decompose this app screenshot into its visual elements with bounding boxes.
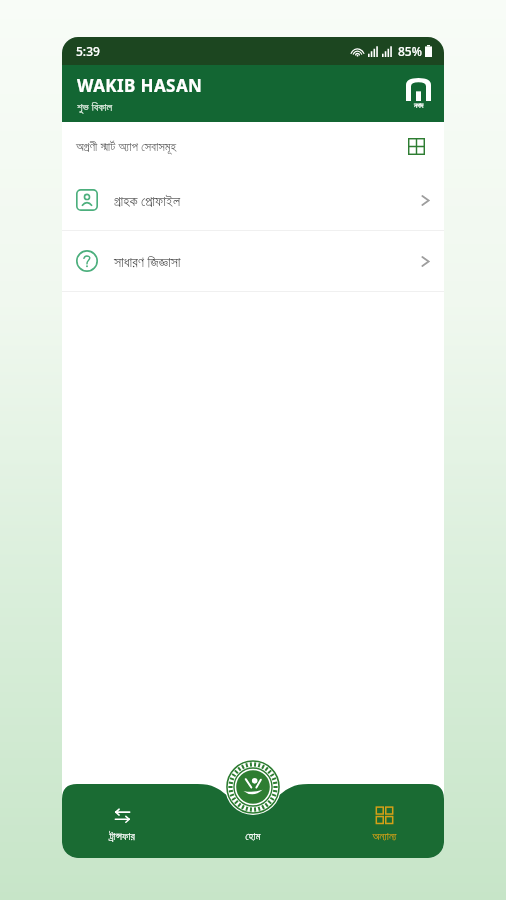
staticText: সাধারণ জিজ্ঞাসা	[114, 252, 181, 271]
button[interactable]: সাধারণ জিজ্ঞাসা	[62, 231, 444, 291]
staticText: 5:39	[76, 43, 100, 59]
button[interactable]: Grid view	[402, 132, 430, 160]
staticText: অগ্রণী স্মার্ট অ্যাপ সেবাসমূহ	[76, 138, 177, 155]
staticText: শুভ বিকাল	[77, 99, 113, 114]
button[interactable]: হোম	[182, 796, 324, 850]
button[interactable]: গ্রাহক প্রোফাইল	[62, 170, 444, 230]
staticText: হোম	[245, 831, 261, 842]
staticText: নগদ	[414, 102, 424, 109]
staticText: ট্রান্সফার	[109, 831, 135, 842]
staticText: WAKIB HASAN	[77, 74, 203, 97]
staticText: 85%	[398, 43, 422, 59]
staticText: অন্যান্য	[372, 831, 397, 842]
button[interactable]: Nagad logo	[406, 78, 431, 109]
button[interactable]: Home	[225, 759, 281, 815]
button[interactable]: Transfer	[62, 796, 182, 850]
staticText: গ্রাহক প্রোফাইল	[114, 191, 181, 210]
button[interactable]: Others	[324, 796, 444, 850]
